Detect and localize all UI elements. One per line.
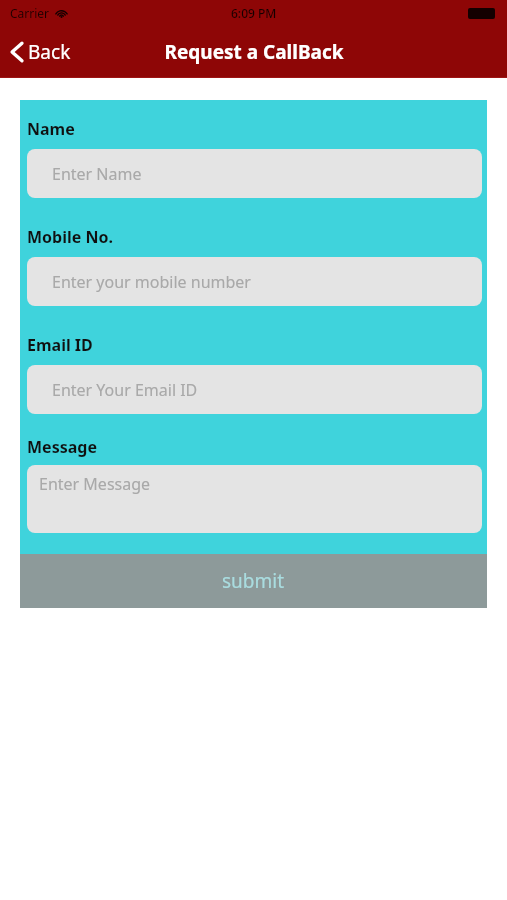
staticText: 6:09 PM [231, 5, 277, 21]
staticText: Message [27, 436, 97, 458]
button[interactable]: submit [20, 554, 487, 608]
button[interactable]: Enter your mobile number [27, 257, 482, 306]
staticText: Mobile No. [27, 226, 113, 248]
staticText: Back [28, 39, 71, 65]
staticText: Email ID [27, 334, 93, 356]
staticText: Carrier [10, 5, 50, 21]
button[interactable]: Enter Name [27, 149, 482, 198]
button[interactable]: Back [0, 26, 83, 78]
staticText: Enter your mobile number [52, 271, 251, 293]
staticText: Name [27, 118, 75, 140]
staticText: Request a CallBack [164, 39, 344, 65]
staticText: Enter Name [52, 163, 142, 185]
staticText: Enter Your Email ID [52, 379, 198, 401]
staticText: Enter Message [39, 473, 151, 495]
button[interactable]: Enter Message [27, 465, 482, 533]
staticText: submit [222, 568, 285, 594]
button[interactable]: Enter Your Email ID [27, 365, 482, 414]
